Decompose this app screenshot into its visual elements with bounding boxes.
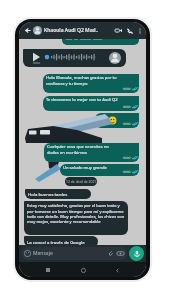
- button[interactable]: Record voice message: [129, 246, 144, 261]
- staticText: Cualquier cosa que necesites no dudes en…: [47, 144, 109, 155]
- button[interactable]: Estoy muy satisfecha, gracias por el bue…: [24, 201, 128, 235]
- button[interactable]: [23, 49, 126, 67]
- staticText: Hola buenos tardes: [28, 191, 68, 197]
- button[interactable]: Call: [125, 26, 134, 35]
- staticText: Khaoula Audi Q2 Mad..: [44, 27, 99, 34]
- button[interactable]: Hola Khaoula, muchas gracias por tu conf…: [43, 74, 139, 93]
- button[interactable]: Video call: [114, 26, 123, 35]
- button[interactable]: Mensaje: [21, 247, 127, 260]
- staticText: Mensaje: [33, 250, 53, 257]
- button[interactable]: Back: [23, 26, 32, 35]
- button[interactable]: [62, 36, 139, 45]
- button[interactable]: More options: [136, 27, 143, 34]
- staticText: Te deseamos lo mejor con tu Audi Q2: [46, 97, 118, 103]
- button[interactable]: Back: [112, 265, 122, 275]
- button[interactable]: Un saludo muy grande: [60, 164, 139, 176]
- staticText: Hola Khaoula, muchas gracias por tu conf…: [46, 75, 117, 86]
- staticText: Un saludo muy grande: [63, 165, 107, 171]
- button[interactable]: Recents: [43, 265, 53, 275]
- staticText: La conocí a través de Google: [27, 239, 85, 245]
- button[interactable]: La conocí a través de Google: [24, 236, 98, 247]
- button[interactable]: Cualquier cosa que necesites no dudes en…: [44, 143, 139, 162]
- button[interactable]: Hola buenos tardes: [25, 189, 91, 199]
- staticText: Estoy muy satisfecha, gracias por el bue…: [27, 203, 125, 224]
- button[interactable]: Te deseamos lo mejor con tu Audi Q2: [43, 96, 139, 111]
- button[interactable]: Home: [78, 265, 88, 275]
- staticText: 12 de abril de 2021: [66, 179, 97, 184]
- button[interactable]: [95, 113, 139, 128]
